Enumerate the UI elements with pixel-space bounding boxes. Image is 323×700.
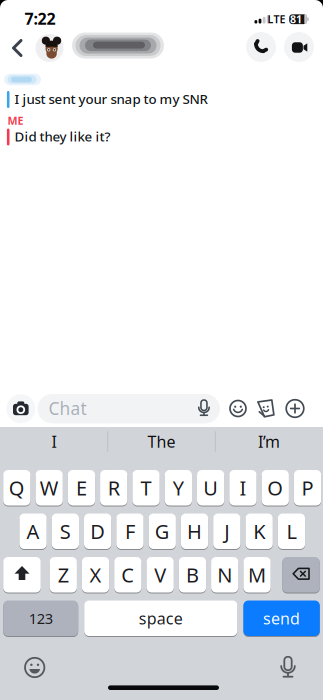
button[interactable]: F xyxy=(116,512,144,550)
button[interactable]: O xyxy=(262,469,289,506)
button[interactable]: Q xyxy=(3,469,30,506)
staticText: V xyxy=(154,561,166,588)
staticText: H xyxy=(187,518,202,545)
button[interactable]: Chat xyxy=(37,394,220,423)
button[interactable]: The xyxy=(111,426,211,456)
button[interactable]: T xyxy=(132,469,160,506)
staticText: E xyxy=(76,474,87,501)
staticText: T xyxy=(140,474,151,501)
button[interactable]: P xyxy=(294,469,321,506)
button[interactable]: Y xyxy=(165,469,192,506)
button[interactable]: Camera xyxy=(6,394,35,423)
button[interactable]: Emoji xyxy=(229,399,247,417)
button[interactable]: More xyxy=(285,399,304,418)
button[interactable]: Dictation xyxy=(276,656,299,679)
staticText: I xyxy=(51,431,56,452)
staticText: A xyxy=(26,518,39,545)
button[interactable]: A xyxy=(19,512,47,550)
staticText: P xyxy=(302,474,314,501)
button[interactable]: I xyxy=(229,469,257,506)
staticText: 7:22 xyxy=(24,8,55,29)
button[interactable]: Delete xyxy=(282,556,320,593)
staticText: C xyxy=(121,561,134,588)
staticText: Chat xyxy=(48,397,86,420)
staticText: G xyxy=(155,518,170,545)
staticText: R xyxy=(108,474,120,501)
button[interactable]: send xyxy=(243,599,320,637)
button[interactable]: Emoji keyboard xyxy=(24,657,45,678)
staticText: Z xyxy=(58,561,69,588)
button[interactable]: Z xyxy=(50,556,77,593)
button[interactable]: L xyxy=(278,512,305,550)
staticText: I’m xyxy=(258,431,280,452)
button[interactable]: R xyxy=(100,469,127,506)
staticText: 81 xyxy=(290,12,302,26)
staticText: U xyxy=(203,474,218,501)
staticText: L xyxy=(286,518,296,545)
staticText: J xyxy=(224,518,229,545)
staticText: Q xyxy=(9,474,25,501)
button[interactable]: B xyxy=(179,556,206,593)
button[interactable]: E xyxy=(68,469,95,506)
button[interactable]: Conversation details xyxy=(32,29,165,65)
staticText: Y xyxy=(173,474,184,501)
staticText: I just sent your snap to my SNR xyxy=(14,90,207,108)
button[interactable]: Stickers xyxy=(256,399,275,418)
button[interactable]: space xyxy=(84,599,237,637)
button[interactable]: S xyxy=(52,512,79,550)
button[interactable]: Back xyxy=(3,35,31,60)
button[interactable]: U xyxy=(197,469,224,506)
button[interactable]: C xyxy=(114,556,141,593)
staticText: send xyxy=(263,608,300,629)
button[interactable]: Video call xyxy=(284,32,314,62)
button[interactable]: H xyxy=(181,512,208,550)
staticText: K xyxy=(253,518,265,545)
staticText: X xyxy=(89,561,101,588)
staticText: D xyxy=(90,518,105,545)
staticText: B xyxy=(186,561,199,588)
button[interactable]: J xyxy=(213,512,240,550)
staticText: I xyxy=(239,474,246,501)
button[interactable]: Shift xyxy=(3,556,41,593)
staticText: The xyxy=(147,431,175,452)
button[interactable]: I’m xyxy=(219,426,319,456)
button[interactable]: W xyxy=(35,469,63,506)
button[interactable]: M xyxy=(243,556,271,593)
staticText: space xyxy=(139,608,183,629)
staticText: O xyxy=(267,474,283,501)
button[interactable]: D xyxy=(84,512,111,550)
staticText: M xyxy=(248,561,266,588)
staticText: 123 xyxy=(29,608,53,628)
staticText: LTE xyxy=(267,12,285,26)
staticText: N xyxy=(217,561,232,588)
button[interactable]: I xyxy=(4,426,104,456)
staticText: Did they like it? xyxy=(14,127,110,145)
button[interactable]: 123 xyxy=(3,599,78,637)
button[interactable]: Call xyxy=(246,32,276,62)
button[interactable]: G xyxy=(149,512,176,550)
staticText: W xyxy=(40,474,59,501)
button[interactable]: V xyxy=(146,556,174,593)
button[interactable]: K xyxy=(245,512,273,550)
button[interactable]: N xyxy=(211,556,238,593)
staticText: S xyxy=(60,518,71,545)
staticText: ME xyxy=(7,113,23,128)
staticText: F xyxy=(125,518,135,545)
button[interactable]: X xyxy=(82,556,109,593)
